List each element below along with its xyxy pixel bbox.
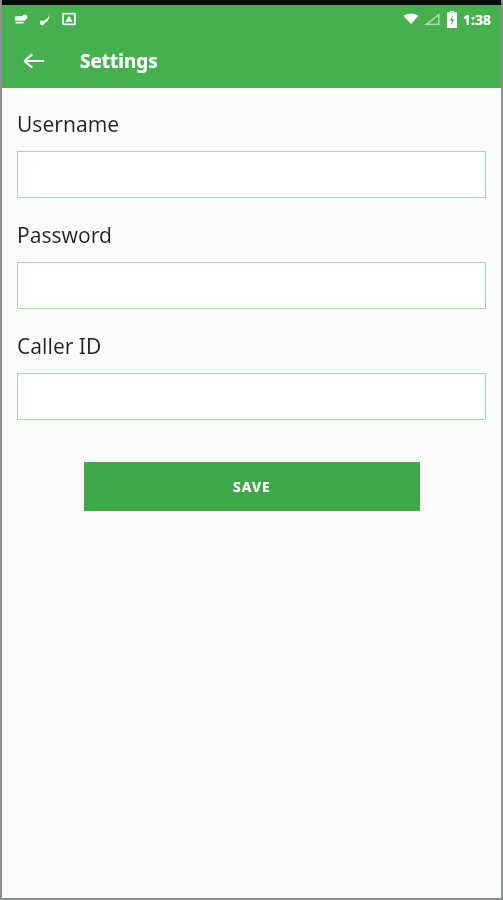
staticText: Caller ID <box>17 332 102 361</box>
button[interactable]: Back <box>14 41 54 81</box>
staticText: Password <box>17 221 112 250</box>
button[interactable] <box>17 151 486 198</box>
staticText: Username <box>17 110 120 139</box>
button[interactable] <box>17 262 486 309</box>
button[interactable]: SAVE <box>84 462 420 511</box>
button[interactable] <box>17 373 486 420</box>
staticText: SAVE <box>233 477 271 496</box>
staticText: 1:38 <box>463 10 491 29</box>
staticText: Settings <box>80 48 158 74</box>
